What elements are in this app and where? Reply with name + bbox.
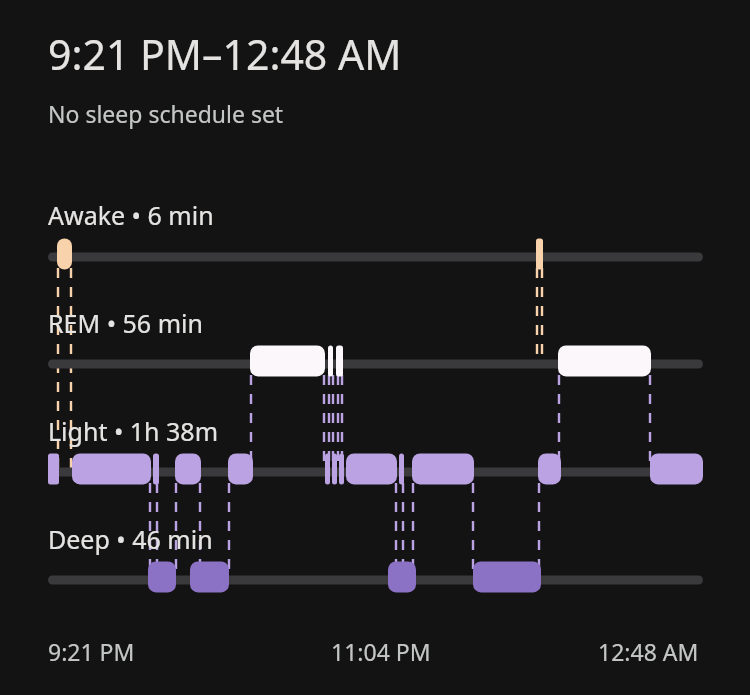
staticText: 12:48 AM xyxy=(598,636,699,667)
staticText: 9:21 PM xyxy=(48,636,135,667)
staticText: Awake • 6 min xyxy=(48,198,214,232)
staticText: No sleep schedule set xyxy=(48,98,284,129)
staticText: REM • 56 min xyxy=(48,306,203,340)
staticText: 9:21 PM–12:48 AM xyxy=(48,26,402,82)
button[interactable]: 9:21 PM–12:48 AM xyxy=(0,0,750,129)
staticText: Deep • 46 min xyxy=(48,522,213,556)
button[interactable]: Deep • 46 min xyxy=(48,522,213,556)
button[interactable]: REM • 56 min xyxy=(48,306,203,340)
staticText: Light • 1h 38m xyxy=(48,414,219,448)
button[interactable]: Awake • 6 min xyxy=(48,198,214,232)
button[interactable]: Light • 1h 38m xyxy=(48,414,219,448)
staticText: 11:04 PM xyxy=(331,636,431,667)
